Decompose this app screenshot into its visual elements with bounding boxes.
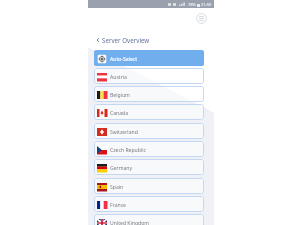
staticText: Austria <box>110 74 127 81</box>
staticText: Server Overview <box>102 36 150 44</box>
button[interactable]: Switzerland <box>94 123 204 139</box>
staticText: Czech Republic <box>110 147 146 154</box>
button[interactable]: Support chat <box>195 12 208 25</box>
button[interactable]: Server Overview <box>95 34 151 45</box>
staticText: Switzerland <box>110 129 138 136</box>
staticText: France <box>110 202 126 209</box>
staticText: Spain <box>110 184 124 191</box>
staticText: Auto-Select <box>110 56 138 63</box>
staticText: United Kingdom <box>110 220 150 225</box>
button[interactable]: Auto-Select <box>94 50 204 66</box>
button[interactable]: Spain <box>94 178 204 194</box>
staticText: Belgium <box>110 92 130 99</box>
button[interactable]: Czech Republic <box>94 141 204 157</box>
staticText: Germany <box>110 165 133 172</box>
staticText: 78% <box>188 2 196 7</box>
button[interactable]: Germany <box>94 159 204 175</box>
staticText: Canada <box>110 110 129 117</box>
button[interactable]: Austria <box>94 68 204 84</box>
button[interactable]: Belgium <box>94 86 204 102</box>
button[interactable]: United Kingdom <box>94 214 204 225</box>
button[interactable]: France <box>94 196 204 212</box>
staticText: 21:50 <box>201 2 212 7</box>
button[interactable]: Canada <box>94 104 204 120</box>
